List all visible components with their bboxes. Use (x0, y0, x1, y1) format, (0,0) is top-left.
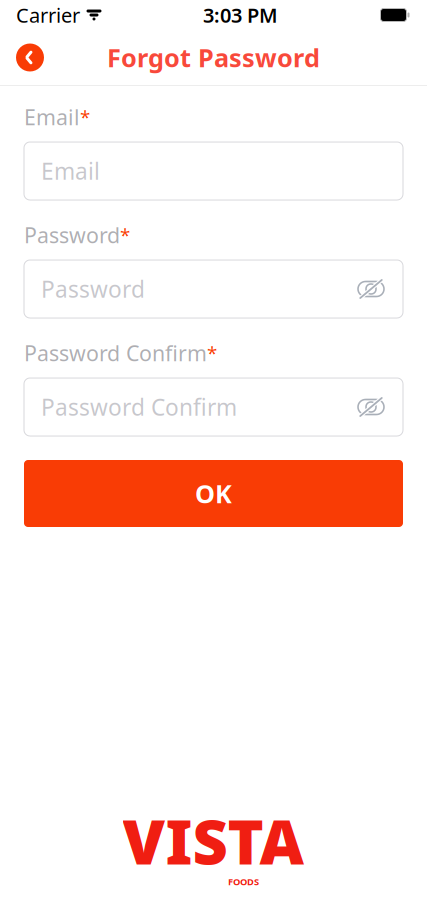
button[interactable]: OK (24, 460, 403, 527)
staticText: Password (41, 274, 145, 304)
button[interactable]: Password Confirm (24, 378, 403, 436)
staticText: VISTA (122, 800, 304, 881)
button[interactable]: Email (24, 142, 403, 200)
staticText: * (80, 105, 90, 129)
staticText: Password Confirm (41, 392, 237, 422)
staticText: * (207, 341, 217, 365)
staticText: Carrier (16, 2, 80, 28)
staticText: Email (41, 156, 100, 186)
staticText: Forgot Password (107, 41, 320, 74)
staticText: FOODS (228, 875, 259, 888)
button[interactable]: Password (24, 260, 403, 318)
button[interactable]: Back (8, 35, 52, 79)
staticText: Password (24, 221, 120, 249)
staticText: * (120, 223, 130, 247)
staticText: OK (195, 477, 232, 510)
staticText: Password Confirm (24, 339, 207, 367)
staticText: Email (24, 103, 80, 131)
staticText: 3:03 PM (203, 2, 278, 28)
